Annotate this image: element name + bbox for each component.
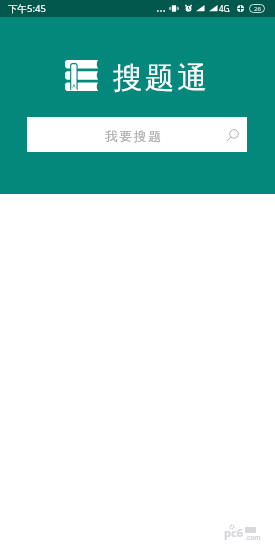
staticText: 4G: [219, 3, 230, 14]
button[interactable]: 我要搜题: [27, 117, 247, 152]
staticText: .com: [245, 533, 261, 542]
other: Search: [225, 126, 243, 144]
staticText: 下午5:45: [8, 2, 46, 15]
staticText: 我要搜题: [105, 128, 163, 144]
staticText: 26: [254, 5, 261, 13]
staticText: pc6: [224, 525, 243, 540]
staticText: 搜题通: [113, 60, 210, 97]
